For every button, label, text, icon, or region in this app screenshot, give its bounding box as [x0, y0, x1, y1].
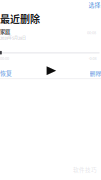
- button[interactable]: 选择: [88, 0, 100, 9]
- button[interactable]: 恢复: [0, 69, 12, 77]
- staticText: 00:08: [87, 29, 96, 35]
- staticText: 删除: [89, 69, 101, 77]
- staticText: 选择: [88, 0, 100, 9]
- staticText: 2019年5月28日: [0, 35, 26, 41]
- button[interactable]: Play: [47, 66, 56, 75]
- staticText: 恢复: [0, 69, 12, 77]
- staticText: 家庭: [0, 27, 10, 35]
- staticText: 最近删除: [0, 11, 40, 26]
- button[interactable]: 删除: [89, 69, 101, 77]
- staticText: 软件技巧: [73, 165, 97, 174]
- staticText: -0:08: [88, 55, 96, 61]
- staticText: 00:00: [0, 55, 9, 61]
